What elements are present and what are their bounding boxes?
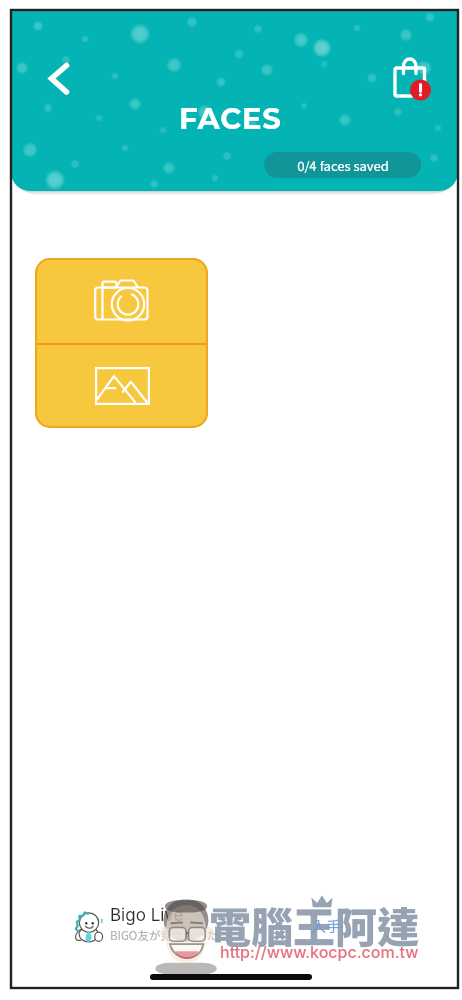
button[interactable]: 0/4 faces saved [264,152,421,178]
button[interactable]: Bigo Live [71,903,261,947]
button[interactable]: Shop [395,58,443,106]
staticText: Bigo Live [110,905,184,926]
button[interactable]: Pick from gallery [35,345,208,428]
staticText: 入手 [311,915,342,937]
button[interactable]: Back [39,54,87,102]
button[interactable]: Take a photo [35,258,208,343]
staticText: BIGO友が見つかった [110,927,218,944]
staticText: http://www.kocpc.com.tw [220,942,419,961]
staticText: FACES [179,101,282,136]
staticText: 0/4 faces saved [297,156,389,175]
staticText: 電腦王阿達 [209,894,420,955]
